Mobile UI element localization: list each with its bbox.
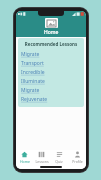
staticText: Quiz xyxy=(55,159,63,164)
staticText: Rejuvenate xyxy=(21,96,48,103)
staticText: Home xyxy=(20,159,30,164)
staticText: Lessons xyxy=(35,159,49,164)
staticText: Recommended Lessons xyxy=(21,41,81,47)
button[interactable]: Profile xyxy=(68,150,86,164)
staticText: Illuminate xyxy=(21,78,45,85)
button[interactable]: Illuminate xyxy=(21,77,81,86)
staticText: Home xyxy=(44,29,59,36)
button[interactable]: Incredible xyxy=(21,68,81,77)
button[interactable]: Transport xyxy=(21,59,81,68)
button[interactable]: Quiz xyxy=(50,150,68,164)
button[interactable]: Migrate xyxy=(21,50,81,59)
button[interactable]: Lessons xyxy=(33,150,50,164)
staticText: Migrate xyxy=(21,51,40,58)
button[interactable]: Migrate xyxy=(21,86,81,95)
button[interactable]: Home xyxy=(16,150,33,164)
button[interactable]: App logo xyxy=(45,18,58,28)
staticText: Incredible xyxy=(21,69,45,76)
staticText: Profile xyxy=(72,159,83,164)
button[interactable]: Rejuvenate xyxy=(21,95,81,104)
staticText: Transport xyxy=(21,60,44,67)
staticText: Migrate xyxy=(21,87,40,94)
